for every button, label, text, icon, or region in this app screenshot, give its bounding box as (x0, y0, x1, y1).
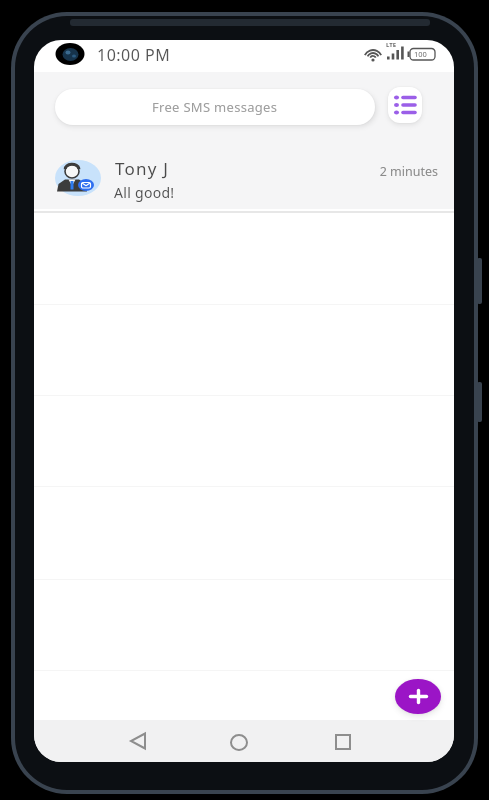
button[interactable] (219, 722, 259, 762)
staticText: 100 (414, 49, 427, 59)
button[interactable] (118, 721, 158, 761)
button[interactable] (323, 722, 363, 762)
staticText: LTE (386, 41, 397, 49)
staticText: 10:00 PM (97, 44, 171, 66)
staticText: 2 minutes (358, 163, 438, 180)
staticText: Tony J (115, 157, 169, 180)
button[interactable]: Free SMS messages (55, 89, 375, 125)
staticText: Free SMS messages (152, 98, 278, 116)
button[interactable] (388, 87, 422, 123)
button[interactable]: Tony J (34, 148, 454, 208)
staticText: All good! (114, 183, 175, 202)
button[interactable] (395, 679, 441, 714)
